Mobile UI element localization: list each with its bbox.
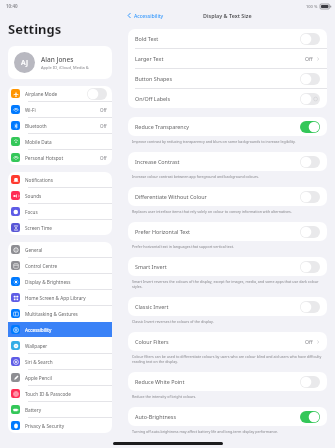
button[interactable]: Increase Contrast [128,152,327,171]
button[interactable]: Reduce White Point [128,372,327,391]
button[interactable]: Touch ID & Passcode [8,386,112,401]
button[interactable]: General [8,242,112,257]
button[interactable]: Colour Filters [128,332,327,351]
button[interactable]: On [300,411,320,423]
staticText: Wi-Fi [25,107,100,113]
staticText: Touch ID & Passcode [25,391,109,397]
button[interactable]: Classic Invert [128,297,327,316]
button[interactable]: Smart Invert [128,257,327,276]
staticText: Accessibility [134,12,164,19]
button[interactable]: Off [300,261,320,273]
staticText: Improve contrast by reducing transparenc… [132,139,323,144]
button[interactable]: Focus [8,204,112,219]
staticText: Differentiate Without Colour [135,193,300,200]
staticText: Alan Jones [41,55,74,64]
button[interactable]: Accessibility [125,10,166,21]
staticText: 100 % [306,4,318,9]
staticText: Button Shapes [135,75,300,82]
staticText: Screen Time [25,225,109,231]
staticText: Increase colour contrast between app for… [132,174,323,179]
staticText: Off [100,123,107,129]
button[interactable]: Differentiate Without Colour [128,187,327,206]
button[interactable]: AJ [8,46,112,79]
staticText: 10:40 [6,3,18,9]
button[interactable]: Siri & Search [8,354,112,369]
button[interactable]: Bluetooth [8,118,112,133]
staticText: Privacy & Security [25,423,109,429]
button[interactable]: Off [300,73,320,85]
button[interactable]: Multitasking & Gestures [8,306,112,321]
button[interactable]: Off [300,226,320,238]
button[interactable]: Off [300,376,320,388]
button[interactable]: Wallpaper [8,338,112,353]
staticText: Smart Invert reverses the colours of the… [132,279,323,289]
button[interactable]: Sounds [8,188,112,203]
button[interactable]: Off [87,88,107,100]
button[interactable]: Home Screen & App Library [8,290,112,305]
button[interactable]: Off [300,191,320,203]
staticText: Bluetooth [25,123,100,129]
staticText: Off [305,338,313,345]
staticText: Personal Hotspot [25,155,100,161]
staticText: On/Off Labels [135,95,300,102]
staticText: Off [100,107,107,113]
staticText: Mobile Data [25,139,109,145]
button[interactable]: Prefer Horizontal Text [128,222,327,241]
button[interactable]: On [300,121,320,133]
button[interactable]: Off [300,301,320,313]
staticText: Colour filters can be used to differenti… [132,354,323,364]
staticText: Multitasking & Gestures [25,311,109,317]
staticText: AJ [21,58,28,68]
staticText: General [25,247,109,253]
button[interactable]: Apple Pencil [8,370,112,385]
staticText: Reduce Transparency [135,123,300,130]
staticText: Larger Text [135,55,305,62]
button[interactable]: Auto-Brightness [128,407,327,426]
staticText: Sounds [25,193,109,199]
staticText: Off [305,55,313,62]
button[interactable]: Larger Text [128,49,327,68]
staticText: Accessibility [25,327,109,333]
staticText: Apple ID, iCloud, Media & Purchases [41,65,106,70]
staticText: Increase Contrast [135,158,300,165]
staticText: Siri & Search [25,359,109,365]
button[interactable]: Airplane Mode [8,86,112,101]
staticText: Replaces user interface items that rely … [132,209,323,214]
staticText: Wallpaper [25,343,109,349]
button[interactable]: Notifications [8,172,112,187]
button[interactable]: Control Centre [8,258,112,273]
staticText: Smart Invert [135,263,300,270]
staticText: Settings [8,20,62,38]
staticText: Prefer horizontal text in languages that… [132,244,323,249]
button[interactable]: Wi-Fi [8,102,112,117]
staticText: Bold Text [135,35,300,42]
button[interactable]: Display & Brightness [8,274,112,289]
button[interactable]: Bold Text [128,29,327,48]
button[interactable]: Button Shapes [128,69,327,88]
button[interactable]: Mobile Data [8,134,112,149]
button[interactable]: Privacy & Security [8,418,112,433]
staticText: Colour Filters [135,338,305,345]
staticText: Reduce the intensity of bright colours. [132,394,323,399]
staticText: Focus [25,209,109,215]
button[interactable]: Personal Hotspot [8,150,112,165]
staticText: Reduce White Point [135,378,300,385]
staticText: Airplane Mode [25,91,85,97]
staticText: Prefer Horizontal Text [135,228,300,235]
button[interactable]: Off [300,33,320,45]
staticText: Off [100,155,107,161]
staticText: Classic Invert [135,303,300,310]
staticText: Notifications [25,177,109,183]
button[interactable]: Accessibility [8,322,112,337]
button[interactable]: On/Off Labels [128,89,327,108]
button[interactable]: Off [300,156,320,168]
staticText: Home Screen & App Library [25,295,109,301]
staticText: Display & Brightness [25,279,109,285]
button[interactable]: Battery [8,402,112,417]
button[interactable]: Screen Time [8,220,112,235]
button[interactable]: Off [300,93,320,105]
staticText: Apple Pencil [25,375,109,381]
staticText: Auto-Brightness [135,413,300,420]
staticText: Display & Text Size [203,12,252,19]
button[interactable]: Reduce Transparency [128,117,327,136]
